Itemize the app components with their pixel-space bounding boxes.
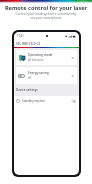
button[interactable]: Operating mode [16,50,77,65]
staticText: Standby inactive [22,99,46,103]
staticText: Remote control for your laser [0,4,92,12]
button[interactable]: Energy saving [16,67,77,84]
staticText: off [28,76,32,80]
staticText: Operating mode [28,53,53,57]
staticText: SEL WW-CX-D CS [16,42,41,46]
button[interactable]: Standby inactive [14,96,79,106]
button[interactable]: Standby toggle [71,100,76,103]
staticText: Device settings [16,88,38,92]
staticText: 17:41 [17,34,24,38]
staticText: Energy saving [28,71,49,75]
staticText: Control your loading device conveniently… [0,12,92,20]
staticText: All directions [28,58,44,62]
